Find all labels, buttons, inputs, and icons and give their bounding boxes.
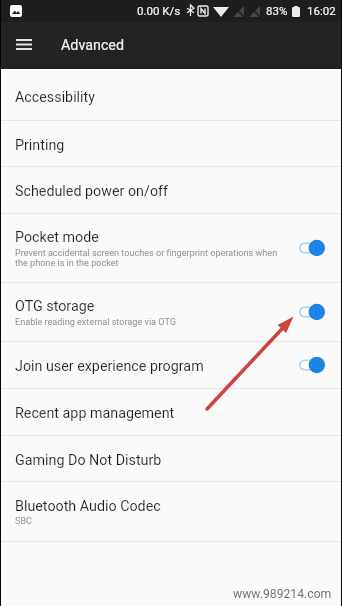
- staticText: Printing: [15, 137, 65, 154]
- staticText: 0.00 K/s: [137, 4, 181, 17]
- staticText: SBC: [15, 516, 32, 527]
- staticText: www.989214.com: [233, 587, 332, 601]
- staticText: Prevent accidental screen touches or fin…: [15, 248, 278, 268]
- staticText: Pocket mode: [15, 229, 99, 246]
- button[interactable]: Toggle on: [299, 356, 325, 374]
- staticText: Advanced: [61, 37, 125, 54]
- staticText: Recent app management: [15, 405, 175, 422]
- button[interactable]: Toggle on: [299, 239, 325, 257]
- button[interactable]: Bluetooth Audio Codec: [0, 482, 342, 541]
- button[interactable]: Join user experience program: [0, 342, 342, 388]
- staticText: Gaming Do Not Disturb: [15, 452, 162, 469]
- staticText: Scheduled power on/off: [15, 183, 168, 200]
- button[interactable]: Accessibility: [0, 69, 342, 120]
- staticText: 16:02: [307, 4, 336, 17]
- button[interactable]: OTG storage: [0, 283, 342, 341]
- button[interactable]: Toggle on: [299, 303, 325, 321]
- button[interactable]: Recent app management: [0, 389, 342, 435]
- staticText: 83%: [266, 4, 288, 17]
- button[interactable]: Pocket mode: [0, 214, 342, 282]
- button[interactable]: Printing: [0, 121, 342, 166]
- staticText: Join user experience program: [15, 358, 204, 375]
- staticText: OTG storage: [15, 298, 95, 315]
- staticText: Bluetooth Audio Codec: [15, 498, 161, 515]
- button[interactable]: Gaming Do Not Disturb: [0, 436, 342, 481]
- button[interactable]: Scheduled power on/off: [0, 167, 342, 213]
- button[interactable]: Open navigation menu: [6, 27, 42, 64]
- staticText: Enable reading external storage via OTG: [15, 317, 176, 328]
- staticText: Accessibility: [15, 89, 96, 106]
